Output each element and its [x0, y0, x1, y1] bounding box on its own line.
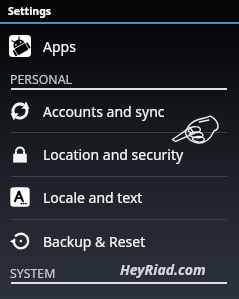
button[interactable]: Backup & Reset	[0, 219, 239, 263]
button[interactable]: Apps	[0, 24, 239, 68]
staticText: PERSONAL	[10, 71, 72, 88]
staticText: Settings	[8, 4, 52, 18]
button[interactable]: Locale and text	[0, 175, 239, 219]
button[interactable]: Location and security	[0, 132, 239, 176]
staticText: HeyRiad.com	[120, 260, 206, 279]
button[interactable]: Accounts and sync	[0, 89, 239, 133]
staticText: SYSTEM	[10, 265, 56, 282]
staticText: Backup & Reset	[43, 232, 146, 251]
staticText: Location and security	[43, 145, 184, 164]
staticText: Apps	[43, 37, 76, 56]
staticText: Accounts and sync	[43, 102, 165, 121]
staticText: Locale and text	[43, 188, 143, 207]
